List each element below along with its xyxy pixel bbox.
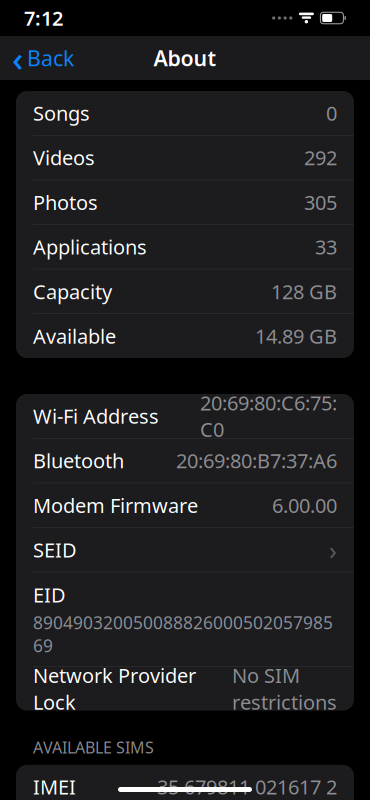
staticText: Applications [33,233,147,260]
staticText: IMEI [33,774,76,800]
staticText: 33 [315,233,337,260]
staticText: SEID [33,536,77,563]
staticText: 20:69:80:B7:37:A6 [176,447,337,474]
staticText: › [329,533,337,567]
button[interactable]: SEID [16,528,354,572]
staticText: Modem Firmware [33,492,198,518]
button[interactable]: ‹ [0,37,86,79]
staticText: ‹ [12,35,23,81]
staticText: Photos [33,189,98,215]
staticText: Capacity [33,278,112,305]
staticText: 0 [326,100,337,126]
staticText: 6.00.00 [272,492,337,518]
staticText: Back [27,44,74,72]
staticText: Network Provider Lock [33,662,196,715]
staticText: 292 [304,144,337,171]
staticText: Videos [33,144,95,171]
staticText: 14.89 GB [255,323,337,349]
staticText: Available [33,323,116,349]
staticText: 89049032005008882600050205798569 [33,611,333,657]
staticText: Songs [33,100,90,126]
staticText: No SIM restrictions [232,662,337,715]
staticText: 7:12 [24,5,63,31]
staticText: Bluetooth [33,447,124,474]
staticText: 128 GB [271,278,337,305]
staticText: About [153,44,216,72]
staticText: 20:69:80:C6:75:C0 [200,389,337,442]
staticText: EID [33,581,66,608]
staticText: AVAILABLE SIMS [33,737,154,758]
staticText: 305 [304,189,337,215]
staticText: 35 679811 021617 2 [157,774,337,800]
staticText: Wi-Fi Address [33,403,159,429]
